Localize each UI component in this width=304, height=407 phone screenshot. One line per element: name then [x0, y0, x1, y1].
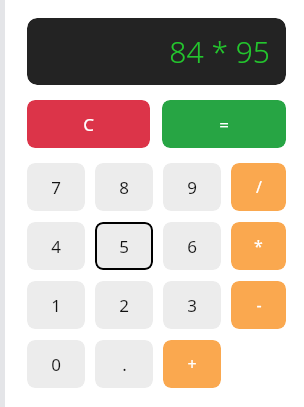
- button[interactable]: 6: [163, 222, 221, 270]
- button[interactable]: 7: [27, 163, 85, 211]
- button[interactable]: 0: [27, 340, 85, 388]
- staticText: 2: [119, 294, 129, 317]
- button[interactable]: *: [231, 222, 286, 270]
- staticText: 4: [51, 235, 61, 258]
- button[interactable]: =: [162, 100, 286, 148]
- button[interactable]: 1: [27, 281, 85, 329]
- button[interactable]: 4: [27, 222, 85, 270]
- button[interactable]: .: [95, 340, 153, 388]
- button[interactable]: +: [163, 340, 221, 388]
- staticText: 3: [187, 294, 197, 317]
- button[interactable]: C: [27, 100, 150, 148]
- staticText: 9: [187, 176, 197, 199]
- staticText: 7: [51, 176, 61, 199]
- staticText: +: [187, 353, 197, 375]
- staticText: 0: [51, 353, 61, 376]
- staticText: /: [256, 176, 262, 198]
- staticText: 6: [187, 235, 197, 258]
- button[interactable]: 2: [95, 281, 153, 329]
- staticText: 5: [119, 235, 129, 258]
- button[interactable]: 5: [95, 222, 153, 270]
- button[interactable]: 84 * 95: [27, 18, 286, 85]
- staticText: .: [122, 353, 127, 376]
- staticText: 8: [119, 176, 129, 199]
- staticText: 1: [51, 294, 61, 317]
- staticText: C: [83, 113, 94, 136]
- button[interactable]: 8: [95, 163, 153, 211]
- staticText: -: [256, 294, 262, 316]
- staticText: *: [254, 235, 263, 257]
- staticText: 84 * 95: [169, 31, 270, 72]
- staticText: =: [219, 113, 229, 136]
- button[interactable]: -: [231, 281, 286, 329]
- button[interactable]: 9: [163, 163, 221, 211]
- button[interactable]: 3: [163, 281, 221, 329]
- button[interactable]: /: [231, 163, 286, 211]
